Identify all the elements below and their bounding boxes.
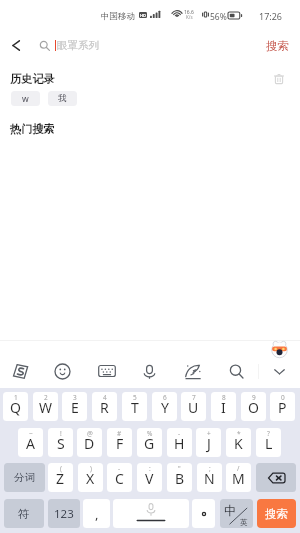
staticText: - [178,429,181,438]
button[interactable]: S [48,428,73,457]
button[interactable]: Voice input [133,356,165,386]
staticText: 1 [14,393,18,402]
button[interactable]: H [167,428,192,457]
staticText: # [117,429,122,438]
staticText: M [232,469,245,488]
staticText: 眼罩系列 [57,39,99,52]
staticText: 4 [103,393,107,402]
button[interactable]: Hide keyboard [263,356,295,386]
staticText: ( [60,464,62,473]
button[interactable]: Sogou input settings [4,356,36,386]
staticText: 7 [192,393,196,402]
button[interactable]: Z [48,463,73,492]
staticText: D [84,434,95,453]
staticText: Q [10,398,21,417]
button[interactable]: B [167,463,192,492]
staticText: ; [209,464,211,473]
button[interactable]: G [137,428,162,457]
staticText: K/s [186,14,193,20]
staticText: B [175,469,185,488]
button[interactable]: X [78,463,103,492]
staticText: ? [267,429,270,438]
button[interactable]: Switch Chinese English [220,499,253,528]
staticText: N [204,469,215,488]
staticText: 16.6 [184,9,194,16]
button[interactable]: Q [3,392,28,421]
staticText: U [188,398,199,417]
button[interactable]: Space / voice input [113,499,189,528]
staticText: 英 [240,518,248,527]
button[interactable]: F [107,428,132,457]
button[interactable]: E [62,392,87,421]
staticText: 17:26 [259,10,283,22]
button[interactable]: 符 [4,499,44,528]
button[interactable]: Keyboard layout [91,356,123,386]
button[interactable]: Back [4,29,27,62]
staticText: 123 [54,506,74,522]
button[interactable]: T [122,392,147,421]
button[interactable]: J [196,428,221,457]
button[interactable]: Search [220,356,252,386]
button[interactable]: Backspace [256,463,296,492]
staticText: + [207,429,211,438]
staticText: 2 [44,393,48,402]
staticText: - [118,464,121,473]
button[interactable]: I [211,392,236,421]
button[interactable]: 搜索 [257,499,296,528]
button[interactable]: w [11,91,40,106]
button[interactable]: Y [152,392,177,421]
staticText: O [248,398,259,417]
button[interactable]: U [181,392,206,421]
button[interactable]: Clear search history [270,70,288,88]
staticText: 热门搜索 [10,122,55,136]
staticText: % [147,429,153,438]
button[interactable]: Assistant [271,341,288,358]
button[interactable]: Handwriting [176,356,208,386]
button[interactable]: C [107,463,132,492]
staticText: 6 [163,393,167,402]
staticText: 8 [222,393,226,402]
staticText: 分词 [14,471,35,484]
button[interactable]: 分词 [4,463,45,492]
staticText: H [174,434,185,453]
staticText: P [278,398,287,417]
button[interactable]: A [18,428,43,457]
button[interactable]: V [137,463,162,492]
button[interactable]: Period [192,499,215,528]
staticText: A [26,434,35,453]
staticText: ! [60,429,62,438]
button[interactable]: 123 [48,499,80,528]
staticText: 符 [18,507,30,521]
button[interactable]: M [226,463,251,492]
staticText: Z [56,469,65,488]
button[interactable]: 搜索 [258,29,296,62]
button[interactable]: L [256,428,281,457]
button[interactable]: R [92,392,117,421]
button[interactable]: D [77,428,102,457]
button[interactable]: , [83,499,110,528]
button[interactable]: O [241,392,266,421]
staticText: S [57,434,65,453]
staticText: 我 [58,93,67,104]
staticText: 搜索 [265,507,288,521]
button[interactable]: N [197,463,222,492]
staticText: E [71,398,79,417]
staticText: " [178,464,181,473]
staticText: * [237,429,241,438]
button[interactable]: K [226,428,251,457]
staticText: @ [87,429,93,438]
staticText: 9 [252,393,256,402]
staticText: 3 [73,393,77,402]
button[interactable]: W [33,392,58,421]
staticText: L [265,434,273,453]
button[interactable]: 我 [48,91,77,106]
staticText: 中国移动 [101,11,135,22]
staticText: ~ [29,429,33,438]
staticText: / [237,464,240,473]
staticText: 5 [133,393,137,402]
button[interactable]: Emoji [46,356,78,386]
staticText: w [22,93,29,105]
staticText: , [95,505,99,523]
staticText: K [234,434,243,453]
button[interactable]: P [270,392,295,421]
